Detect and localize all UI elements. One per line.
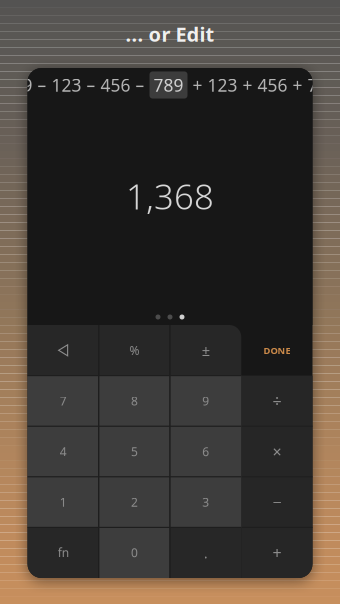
button[interactable]: Add — [241, 527, 312, 578]
button[interactable]: Divide — [241, 376, 312, 426]
staticText: 6 — [202, 443, 209, 459]
staticText: 7 — [60, 393, 67, 409]
staticText: 8 — [131, 393, 138, 409]
staticText: 9 — [202, 393, 209, 409]
staticText: . — [204, 543, 208, 562]
button[interactable]: 4 — [27, 426, 99, 477]
button[interactable]: Function — [27, 527, 99, 578]
staticText: 2 — [131, 494, 138, 510]
staticText: 5 — [131, 443, 138, 459]
button[interactable]: DONE — [241, 325, 312, 376]
staticText: + 123 + 456 + 789 — [187, 73, 337, 96]
staticText: + — [272, 542, 281, 563]
button[interactable]: 6 — [170, 426, 241, 477]
button[interactable]: 9 — [170, 376, 241, 426]
button[interactable]: % — [99, 325, 170, 376]
button[interactable]: Multiply — [241, 426, 312, 477]
button[interactable]: 8 — [99, 376, 170, 426]
staticText: 1,368 — [126, 173, 214, 219]
staticText: 3 — [202, 494, 209, 510]
staticText: DONE — [263, 344, 290, 356]
staticText: 789 – 123 – 456 – — [2, 73, 149, 96]
staticText: − — [272, 491, 281, 513]
staticText: % — [129, 342, 139, 358]
button[interactable]: 0 — [99, 527, 170, 578]
staticText: fn — [58, 545, 69, 561]
staticText: ± — [202, 341, 210, 360]
button[interactable]: 7 — [27, 376, 99, 426]
staticText: 4 — [60, 443, 67, 459]
staticText: 0 — [131, 545, 138, 561]
staticText: 1 — [60, 494, 67, 510]
staticText: ÷ — [272, 390, 281, 411]
button[interactable]: Delete — [27, 325, 99, 376]
staticText: × — [272, 441, 281, 462]
button[interactable]: ... or Edit — [0, 0, 340, 68]
button[interactable]: 5 — [99, 426, 170, 477]
button[interactable]: 3 — [170, 477, 241, 527]
button[interactable]: Subtract — [241, 477, 312, 527]
staticText: 789 — [153, 73, 183, 96]
button[interactable]: 1 — [27, 477, 99, 527]
staticText: ... or Edit — [125, 21, 214, 47]
button[interactable]: Plus minus — [170, 325, 241, 376]
button[interactable]: 2 — [99, 477, 170, 527]
